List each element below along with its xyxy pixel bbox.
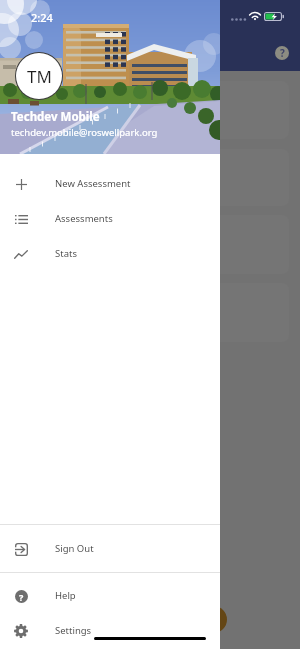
staticText: Sign Out <box>55 542 94 555</box>
staticText: ? <box>280 46 285 60</box>
staticText: Completed • Today <box>23 245 103 257</box>
staticText: Settings <box>55 624 92 637</box>
button[interactable]: Stats <box>0 236 220 271</box>
staticText: 2:24 <box>31 10 53 25</box>
staticText: Help <box>55 589 76 602</box>
button[interactable] <box>11 81 289 139</box>
button[interactable]: Help <box>268 39 296 67</box>
staticText: techdev.mobile@roswellpark.org <box>11 126 158 139</box>
staticText: TM <box>27 65 52 88</box>
button[interactable]: Assessments <box>0 201 220 236</box>
staticText: Completed • Today <box>23 179 103 191</box>
staticText: Techdev Mobile <box>11 109 100 125</box>
button[interactable]: Assessment <box>11 215 289 274</box>
button[interactable]: Settings <box>0 613 220 648</box>
button[interactable] <box>0 71 300 649</box>
staticText: New Assessment <box>55 177 131 190</box>
staticText: Assessments <box>55 212 113 225</box>
button[interactable]: Sign Out <box>0 531 220 566</box>
button[interactable]: ? <box>0 578 220 613</box>
staticText: Stats <box>55 247 77 260</box>
button[interactable]: New Assessment <box>0 166 220 201</box>
button[interactable]: Assessment <box>11 283 289 342</box>
button[interactable]: Assessment <box>11 149 289 206</box>
staticText: ? <box>19 591 24 603</box>
button[interactable]: Add assessment <box>200 606 227 633</box>
